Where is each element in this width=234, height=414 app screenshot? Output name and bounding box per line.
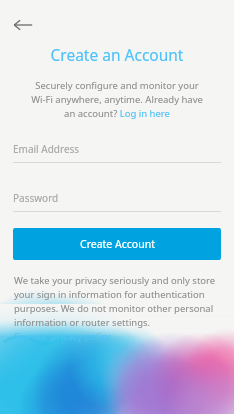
button[interactable]: Email Address	[13, 142, 221, 163]
staticText: Email Address	[13, 142, 80, 156]
button[interactable]: See our privacy policy.	[14, 330, 113, 343]
button[interactable]: Password	[13, 191, 221, 212]
staticText: Create Account	[80, 237, 155, 251]
staticText: Create an Account	[0, 44, 234, 65]
staticText: Password	[13, 191, 59, 205]
staticText: We take your privacy seriously and only …	[14, 274, 221, 329]
button[interactable]: Back	[6, 8, 40, 42]
button[interactable]: Create Account	[13, 228, 221, 260]
staticText: Securely configure and monitor your Wi-F…	[14, 79, 220, 120]
